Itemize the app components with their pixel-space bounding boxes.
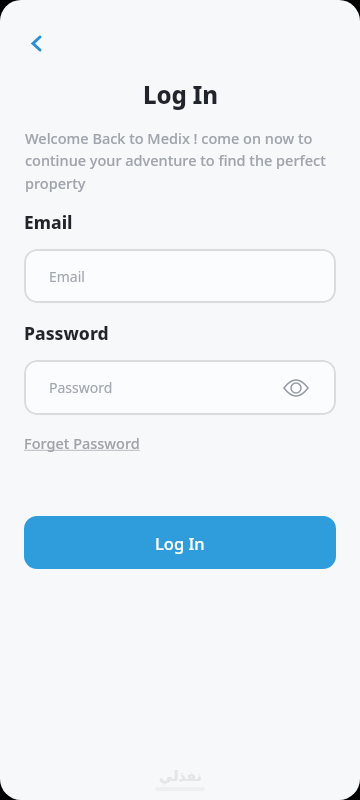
staticText: Log In (155, 532, 205, 554)
staticText: Email (49, 267, 85, 286)
button[interactable]: Log In (24, 516, 336, 569)
button[interactable] (282, 374, 310, 402)
staticText: نفذلي (159, 768, 202, 784)
button[interactable]: Password (24, 360, 336, 415)
staticText: Log In (143, 78, 218, 111)
staticText: Email (24, 210, 73, 234)
staticText: Password (24, 321, 109, 345)
button[interactable]: Forget Password (24, 433, 140, 453)
button[interactable] (25, 31, 49, 55)
staticText: Password (49, 378, 113, 397)
staticText: Welcome Back to Medix ! come on now to c… (25, 128, 341, 193)
button[interactable]: Email (24, 249, 336, 303)
